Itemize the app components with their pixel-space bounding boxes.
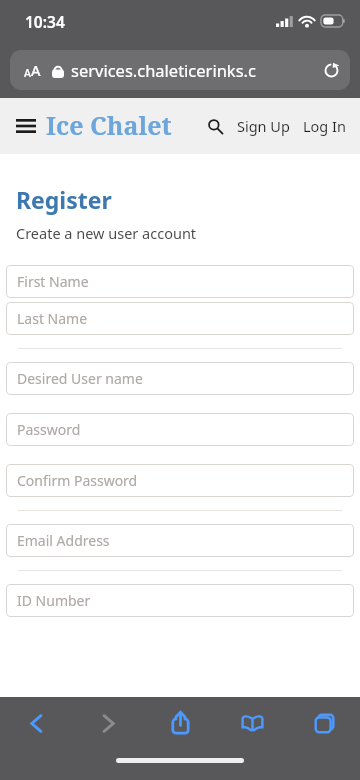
staticText: 10:34 [25, 11, 65, 32]
staticText: First Name [17, 272, 89, 291]
button[interactable]: Search [201, 112, 229, 140]
button[interactable]: Confirm Password [6, 464, 354, 497]
button[interactable]: Menu [7, 107, 45, 145]
button[interactable]: Bookmarks [216, 697, 288, 749]
button[interactable]: ID Number [6, 584, 354, 617]
button[interactable]: Email Address [6, 524, 354, 557]
button[interactable]: Sign Up [234, 109, 293, 143]
staticText: Register [16, 184, 112, 215]
button[interactable]: Reload [316, 55, 346, 85]
staticText: A [24, 66, 31, 80]
staticText: services.chaleticerinks.c [71, 59, 256, 81]
button[interactable]: Tabs [288, 697, 360, 749]
button[interactable]: Forward [72, 697, 144, 749]
button[interactable]: Password [6, 413, 354, 446]
staticText: Confirm Password [17, 471, 138, 490]
button[interactable]: Back [0, 697, 72, 749]
button[interactable]: Last Name [6, 302, 354, 335]
button[interactable]: Share [144, 697, 216, 749]
staticText: Last Name [17, 309, 88, 328]
staticText: Create a new user account [16, 223, 197, 243]
button[interactable]: Text size [17, 55, 47, 85]
button[interactable]: Log In [300, 109, 349, 143]
staticText: Email Address [17, 531, 110, 550]
staticText: ID Number [17, 591, 91, 610]
staticText: Password [17, 420, 81, 439]
button[interactable]: Text size [10, 50, 350, 90]
button[interactable]: First Name [6, 265, 354, 298]
button[interactable]: Ice Chalet [46, 108, 172, 142]
staticText: Desired User name [17, 369, 143, 388]
staticText: A [31, 60, 41, 80]
button[interactable]: Desired User name [6, 362, 354, 395]
